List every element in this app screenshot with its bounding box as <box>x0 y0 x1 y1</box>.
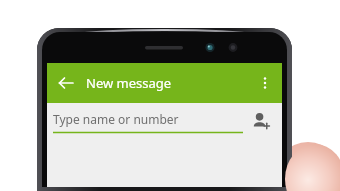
button[interactable]: More options <box>254 72 276 94</box>
staticText: Type name or number <box>53 111 179 127</box>
staticText: New message <box>86 74 172 92</box>
button[interactable]: Back <box>54 71 78 95</box>
button[interactable]: Add contact <box>249 109 273 133</box>
button[interactable]: Type name or number <box>53 106 245 136</box>
